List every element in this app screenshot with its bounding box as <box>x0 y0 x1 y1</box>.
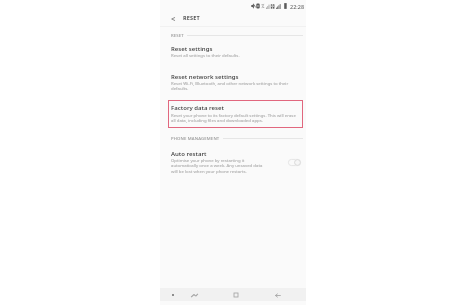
staticText: Reset Wi-Fi, Bluetooth, and other networ… <box>171 80 303 92</box>
button[interactable]: Factory data reset <box>160 100 306 127</box>
button[interactable]: Reset settings <box>160 43 306 63</box>
button[interactable]: Recents <box>188 289 200 301</box>
staticText: Factory data reset <box>171 104 225 112</box>
button[interactable]: Back <box>272 289 284 301</box>
staticText: Reset all settings to their defaults. <box>171 52 303 58</box>
button[interactable]: Back <box>167 13 179 25</box>
button[interactable]: Keyboard <box>167 289 179 301</box>
staticText: Reset settings <box>171 45 213 53</box>
button[interactable]: Home <box>230 289 242 301</box>
button[interactable]: Auto restart toggle <box>286 157 302 168</box>
button[interactable]: Reset network settings <box>160 65 306 89</box>
staticText: RESET <box>183 14 200 21</box>
staticText: PHONE MANAGEMENT <box>171 135 220 141</box>
staticText: Reset your phone to its factory default … <box>171 112 299 124</box>
staticText: 22:28 <box>290 3 305 10</box>
staticText: Optimise your phone by restarting it aut… <box>171 157 267 175</box>
staticText: RESET <box>171 32 184 38</box>
staticText: Reset network settings <box>171 73 239 81</box>
staticText: Auto restart <box>171 150 207 158</box>
